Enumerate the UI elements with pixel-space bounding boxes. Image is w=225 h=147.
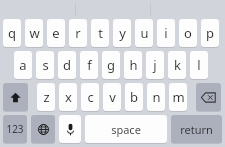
button[interactable]: Switch keyboard [31,115,55,143]
staticText: i [164,24,168,42]
staticText: return [180,122,213,137]
staticText: d [63,56,71,74]
staticText: l [197,56,201,74]
staticText: z [43,88,50,106]
button[interactable]: return [171,115,222,143]
staticText: p [206,24,214,42]
button[interactable]: l [190,51,208,79]
staticText: n [152,88,161,106]
staticText: k [174,56,181,74]
button[interactable]: r [69,19,87,47]
button[interactable]: w [25,19,43,47]
staticText: g [107,56,115,74]
button[interactable]: f [80,51,98,79]
button[interactable]: t [91,19,109,47]
button[interactable]: i [157,19,175,47]
button[interactable]: o [179,19,197,47]
button[interactable]: q [3,19,21,47]
staticText: c [87,88,94,106]
staticText: 123 [6,122,24,136]
button[interactable]: c [81,83,99,111]
staticText: q [8,24,16,42]
staticText: r [75,24,81,42]
staticText: e [52,24,60,42]
button[interactable]: e [47,19,65,47]
button[interactable]: Shift [3,83,28,111]
button[interactable]: u [135,19,153,47]
staticText: u [140,24,149,42]
button[interactable]: Voice input [59,115,81,143]
staticText: o [184,24,192,42]
button[interactable]: z [37,83,55,111]
button[interactable]: 123 [3,115,27,143]
staticText: j [153,56,157,74]
button[interactable]: k [168,51,186,79]
button[interactable]: y [113,19,131,47]
staticText: b [130,88,138,106]
staticText: x [65,88,72,106]
button[interactable]: x [59,83,77,111]
button[interactable]: m [169,83,187,111]
button[interactable]: s [36,51,54,79]
staticText: w [29,24,40,42]
staticText: f [87,56,92,74]
staticText: v [109,88,116,106]
button[interactable]: Backspace [196,83,221,111]
button[interactable]: n [147,83,165,111]
staticText: h [129,56,138,74]
staticText: t [98,24,103,42]
button[interactable]: p [201,19,219,47]
button[interactable]: a [14,51,32,79]
button[interactable]: b [125,83,143,111]
button[interactable]: d [58,51,76,79]
button[interactable]: space [85,115,167,143]
staticText: space [111,122,141,137]
staticText: a [19,56,27,74]
button[interactable]: j [146,51,164,79]
button[interactable]: h [124,51,142,79]
staticText: m [172,88,185,106]
staticText: y [119,24,126,42]
staticText: s [42,56,49,74]
button[interactable]: g [102,51,120,79]
button[interactable]: v [103,83,121,111]
